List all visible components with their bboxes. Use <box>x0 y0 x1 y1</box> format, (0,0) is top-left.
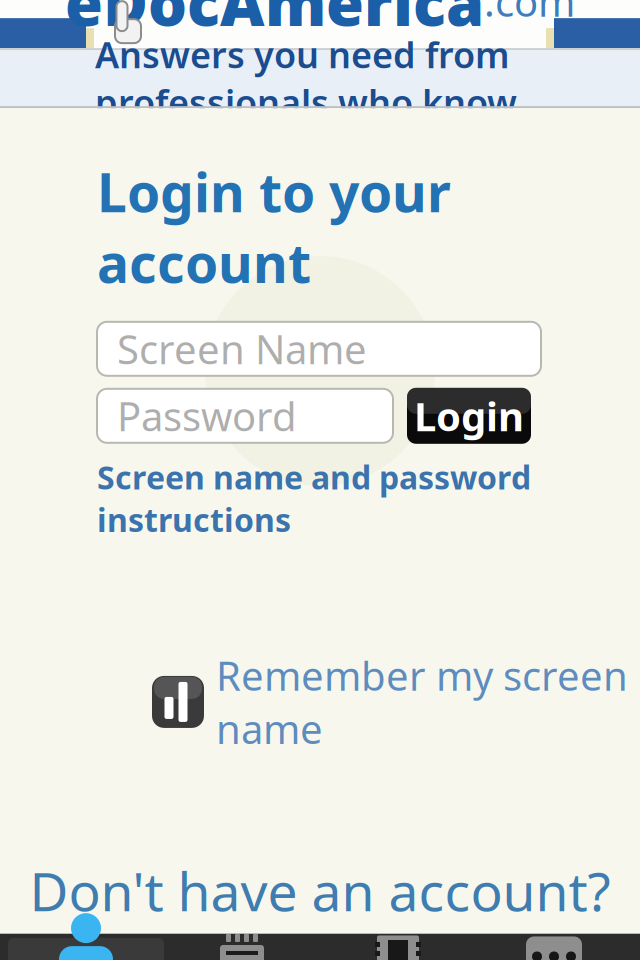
staticText: Screen Name <box>117 322 367 375</box>
button[interactable]: Login <box>407 388 531 444</box>
button[interactable]: Remember my screen name <box>152 649 628 755</box>
button[interactable]: About <box>476 938 632 960</box>
button[interactable]: Health Tip <box>164 938 320 960</box>
button[interactable]: Videos <box>320 938 476 960</box>
staticText: .com <box>484 0 575 28</box>
button[interactable]: Screen name and password instructions <box>97 456 531 541</box>
staticText: Don't have an account? <box>29 855 610 926</box>
button[interactable]: Your Account <box>8 938 164 960</box>
staticText: Remember my screen name <box>216 649 628 755</box>
staticText: Answers you need from professionals who … <box>95 30 545 126</box>
staticText: Password <box>117 389 297 442</box>
staticText: eDocAmerica <box>65 0 484 43</box>
staticText: Login <box>414 389 524 442</box>
staticText: Login to your account <box>97 156 451 298</box>
staticText: Screen name and password instructions <box>97 456 531 541</box>
button[interactable]: Don't have an account? <box>29 855 610 926</box>
